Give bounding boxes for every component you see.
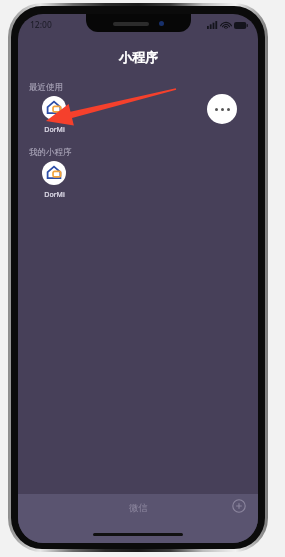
button[interactable]: Add <box>232 499 246 513</box>
staticText: 小程序 <box>119 49 158 65</box>
staticText: 微信 <box>129 502 148 514</box>
button[interactable]: More options <box>207 94 237 124</box>
button[interactable]: 微信 <box>123 500 154 516</box>
staticText: DorMi <box>44 190 65 200</box>
staticText: 最近使用 <box>29 82 63 93</box>
staticText: 我的小程序 <box>29 147 72 158</box>
button[interactable]: DorMi <box>29 96 79 135</box>
button[interactable]: DorMi <box>29 161 79 200</box>
staticText: 12:00 <box>30 19 52 31</box>
staticText: DorMi <box>44 125 65 135</box>
